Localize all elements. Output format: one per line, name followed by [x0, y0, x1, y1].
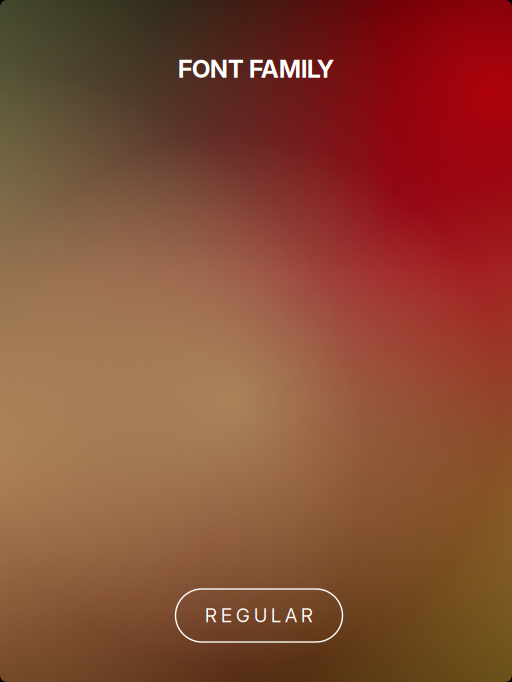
- staticText: FONT FAMILY: [178, 54, 334, 84]
- staticText: REGULAR: [205, 604, 313, 627]
- button[interactable]: REGULAR: [175, 589, 342, 642]
